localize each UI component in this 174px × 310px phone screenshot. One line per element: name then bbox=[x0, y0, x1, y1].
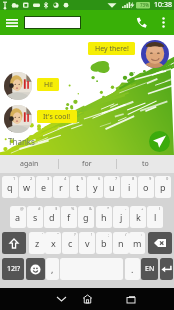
button[interactable]: again bbox=[0, 155, 58, 173]
staticText: ? bbox=[74, 232, 76, 237]
button[interactable]: back bbox=[148, 232, 172, 254]
button[interactable]: c bbox=[62, 232, 78, 254]
button[interactable]: Send bbox=[149, 131, 170, 152]
button[interactable]: u bbox=[104, 176, 120, 198]
button[interactable]: Thanks bbox=[8, 135, 41, 147]
button[interactable]: g bbox=[78, 206, 94, 228]
button[interactable]: k bbox=[130, 206, 146, 228]
button[interactable]: Recents bbox=[120, 288, 142, 310]
button[interactable]: a bbox=[10, 206, 26, 228]
button[interactable]: l bbox=[147, 206, 163, 228]
button[interactable]: p bbox=[155, 176, 171, 198]
staticText: : bbox=[141, 232, 143, 237]
staticText: ( bbox=[159, 206, 161, 211]
staticText: 2 bbox=[30, 176, 33, 181]
button[interactable]: q bbox=[2, 176, 18, 198]
staticText: j bbox=[120, 211, 123, 223]
button[interactable]: x bbox=[45, 232, 61, 254]
button[interactable]: s bbox=[27, 206, 43, 228]
button[interactable]: b bbox=[96, 232, 112, 254]
staticText: Hi! bbox=[44, 80, 53, 90]
button[interactable]: h bbox=[96, 206, 112, 228]
staticText: , bbox=[51, 263, 54, 275]
staticText: v bbox=[85, 237, 90, 249]
staticText: z bbox=[35, 237, 40, 249]
staticText: Thanks bbox=[8, 136, 35, 147]
staticText: w bbox=[23, 181, 31, 193]
button[interactable]: Hi! bbox=[37, 78, 59, 91]
staticText: 0 bbox=[166, 176, 169, 181]
button[interactable]: enter bbox=[160, 258, 173, 280]
button[interactable]: r bbox=[53, 176, 69, 198]
staticText: / bbox=[125, 232, 127, 237]
button[interactable]: v bbox=[79, 232, 95, 254]
staticText: e bbox=[41, 181, 47, 193]
staticText: again bbox=[20, 159, 39, 169]
staticText: 73% bbox=[140, 2, 149, 8]
button[interactable]: e bbox=[36, 176, 52, 198]
button[interactable]: , bbox=[46, 258, 59, 280]
staticText: x bbox=[51, 237, 56, 249]
staticText: * bbox=[107, 206, 110, 211]
button[interactable]: z bbox=[29, 232, 45, 254]
staticText: 3 bbox=[47, 176, 50, 181]
button[interactable]: smile bbox=[26, 258, 45, 280]
button[interactable]: to bbox=[116, 155, 174, 173]
staticText: q bbox=[7, 181, 13, 193]
button[interactable]: f bbox=[61, 206, 77, 228]
staticText: r bbox=[59, 181, 63, 193]
staticText: b bbox=[101, 237, 107, 249]
button[interactable]: Back bbox=[50, 288, 72, 310]
button[interactable]: Home bbox=[76, 288, 98, 310]
staticText: + bbox=[141, 206, 144, 211]
staticText: ; bbox=[108, 232, 110, 237]
staticText: l bbox=[154, 211, 157, 223]
button[interactable]: Hey there! bbox=[88, 42, 135, 55]
button[interactable]: for bbox=[58, 155, 116, 173]
staticText: ! bbox=[91, 232, 93, 237]
button[interactable]: It's cool! bbox=[37, 110, 77, 123]
button[interactable]: More options bbox=[155, 10, 171, 35]
staticText: . bbox=[131, 263, 134, 275]
button[interactable]: Menu bbox=[0, 10, 24, 35]
button[interactable]: d bbox=[44, 206, 60, 228]
staticText: 7 bbox=[115, 176, 118, 181]
button[interactable]: EN bbox=[141, 258, 158, 280]
button[interactable]: 12!? bbox=[2, 258, 24, 280]
staticText: m bbox=[133, 237, 142, 249]
staticText: y bbox=[93, 181, 98, 193]
staticText: g bbox=[83, 211, 89, 223]
button[interactable]: w bbox=[19, 176, 35, 198]
button[interactable]: t bbox=[70, 176, 86, 198]
button[interactable]: Call bbox=[130, 10, 152, 35]
staticText: k bbox=[136, 211, 141, 223]
staticText: EN bbox=[145, 264, 155, 274]
staticText: to bbox=[142, 159, 149, 169]
staticText: @ bbox=[20, 206, 24, 211]
button[interactable]: n bbox=[113, 232, 129, 254]
staticText: i bbox=[128, 181, 131, 193]
staticText: c bbox=[68, 237, 73, 249]
staticText: - bbox=[125, 206, 127, 211]
staticText: s bbox=[33, 211, 38, 223]
staticText: 5 bbox=[81, 176, 84, 181]
staticText: 6 bbox=[98, 176, 101, 181]
button[interactable]: y bbox=[87, 176, 103, 198]
staticText: 1 bbox=[13, 176, 16, 181]
button[interactable]: j bbox=[113, 206, 129, 228]
button[interactable]: m bbox=[129, 232, 145, 254]
staticText: 8 bbox=[132, 176, 135, 181]
staticText: t bbox=[76, 181, 80, 193]
button[interactable]: i bbox=[121, 176, 137, 198]
staticText: h bbox=[101, 211, 107, 223]
staticText: ' bbox=[42, 232, 43, 237]
staticText: d bbox=[49, 211, 55, 223]
button[interactable]: . bbox=[125, 258, 140, 280]
staticText: Hey there! bbox=[95, 44, 129, 54]
button[interactable]: o bbox=[138, 176, 154, 198]
staticText: & bbox=[89, 206, 92, 211]
button[interactable]: shift bbox=[2, 232, 26, 254]
staticText: f bbox=[67, 211, 71, 223]
